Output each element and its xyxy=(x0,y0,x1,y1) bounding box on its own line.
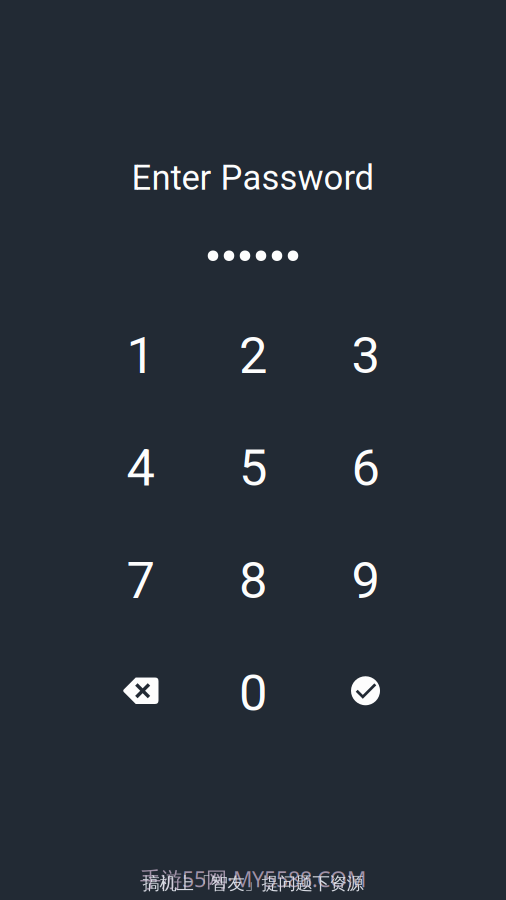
staticText: 6 xyxy=(351,439,379,498)
button[interactable]: Delete xyxy=(84,637,197,749)
button[interactable]: 7 xyxy=(84,524,197,637)
staticText: 9 xyxy=(351,551,379,610)
button[interactable]: Confirm xyxy=(309,637,422,749)
button[interactable]: 6 xyxy=(309,412,422,524)
staticText: 3 xyxy=(351,326,379,385)
button[interactable]: 1 xyxy=(84,299,197,412)
staticText: 4 xyxy=(126,439,154,498)
button[interactable]: 8 xyxy=(197,524,309,637)
staticText: 手游55网·MY5588.COM xyxy=(140,865,366,893)
staticText: 1 xyxy=(126,326,154,385)
staticText: Enter Password xyxy=(131,158,374,198)
button[interactable]: 4 xyxy=(84,412,197,524)
button[interactable]: 9 xyxy=(309,524,422,637)
staticText: 7 xyxy=(126,551,154,610)
staticText: 0 xyxy=(239,664,267,723)
staticText: 2 xyxy=(239,326,267,385)
button[interactable]: 3 xyxy=(309,299,422,412)
button[interactable]: 2 xyxy=(197,299,309,412)
button[interactable]: 0 xyxy=(197,637,309,749)
staticText: 5 xyxy=(239,439,267,498)
staticText: 8 xyxy=(239,551,267,610)
staticText: 搞机上「智友」提问题下资源 xyxy=(142,873,363,894)
button[interactable]: 5 xyxy=(197,412,309,524)
